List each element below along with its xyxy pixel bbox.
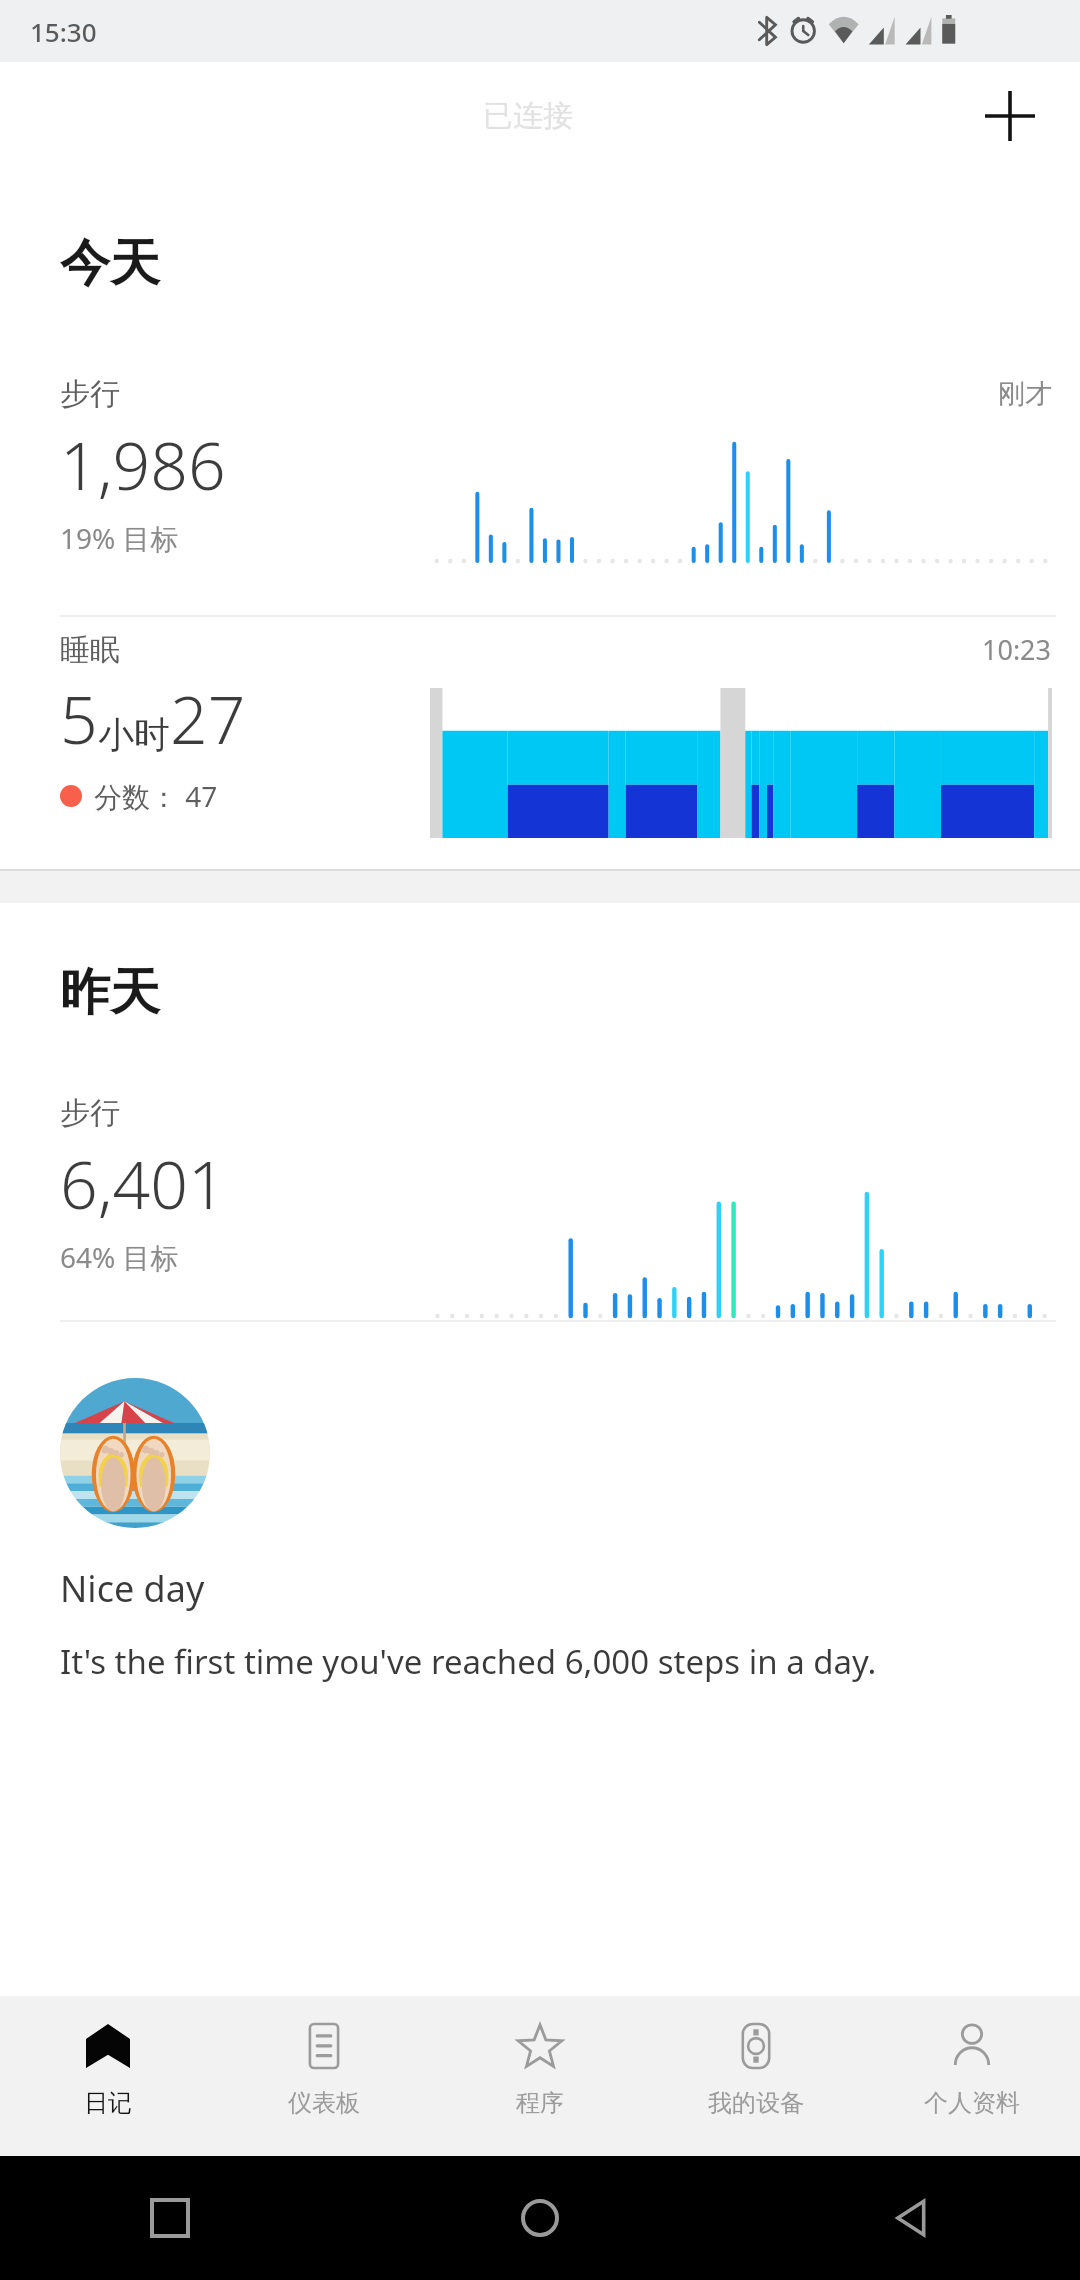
staticText: 15:30 (30, 14, 97, 49)
button[interactable]: Nice day (0, 1322, 1080, 1684)
staticText: 刚才 (998, 377, 1052, 411)
staticText: 10:23 (982, 631, 1052, 668)
staticText: 今天 (60, 232, 160, 295)
staticText: 小时 (98, 712, 170, 757)
staticText: 日记 (84, 2088, 132, 2118)
button[interactable]: 步行 (0, 365, 1080, 615)
staticText: 步行 (60, 375, 120, 413)
button[interactable]: 我的设备 (648, 1996, 864, 2156)
staticText: 个人资料 (924, 2088, 1020, 2118)
staticText: 1,986 (60, 419, 226, 509)
staticText: 6,401 (60, 1138, 226, 1228)
staticText: 昨天 (60, 961, 160, 1024)
button[interactable]: Home (490, 2168, 590, 2268)
button[interactable]: 仪表板 (216, 1996, 432, 2156)
staticText: 27 (170, 673, 246, 763)
button[interactable]: Add (962, 68, 1058, 164)
button[interactable]: 步行 (0, 1094, 1080, 1320)
button[interactable]: 睡眠 (0, 617, 1080, 869)
staticText: 仪表板 (288, 2088, 360, 2118)
staticText: 我的设备 (708, 2088, 804, 2118)
staticText: 64% 目标 (60, 1238, 179, 1276)
staticText: Nice day (60, 1564, 205, 1613)
button[interactable]: 个人资料 (864, 1996, 1080, 2156)
staticText: 5 (60, 673, 98, 763)
staticText: 19% 目标 (60, 519, 179, 557)
staticText: 步行 (60, 1094, 120, 1132)
button[interactable]: Recents (120, 2168, 220, 2268)
staticText: It's the first time you've reached 6,000… (60, 1639, 877, 1684)
button[interactable]: Back (860, 2168, 960, 2268)
staticText: 分数： 47 (94, 777, 218, 815)
button[interactable]: 日记 (0, 1996, 216, 2156)
staticText: 睡眠 (60, 631, 120, 669)
staticText: 已连接 (483, 97, 573, 135)
staticText: 程序 (516, 2088, 564, 2118)
button[interactable]: 程序 (432, 1996, 648, 2156)
